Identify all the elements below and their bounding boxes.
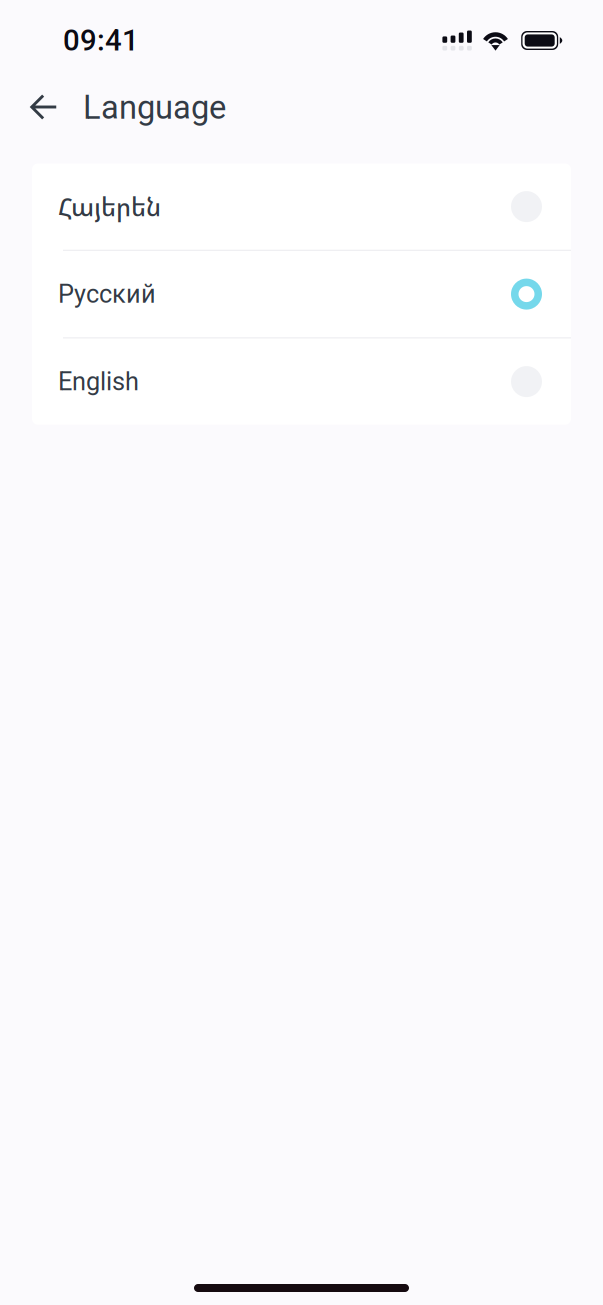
- button[interactable]: Back: [22, 83, 66, 127]
- staticText: Language: [83, 88, 226, 127]
- button[interactable]: English: [32, 338, 571, 425]
- staticText: 09:41: [63, 23, 139, 58]
- button[interactable]: Русский: [32, 251, 571, 337]
- staticText: Հայերեն: [58, 190, 161, 223]
- button[interactable]: Հայերեն: [32, 163, 571, 250]
- staticText: Русский: [58, 279, 156, 309]
- staticText: English: [58, 367, 139, 396]
